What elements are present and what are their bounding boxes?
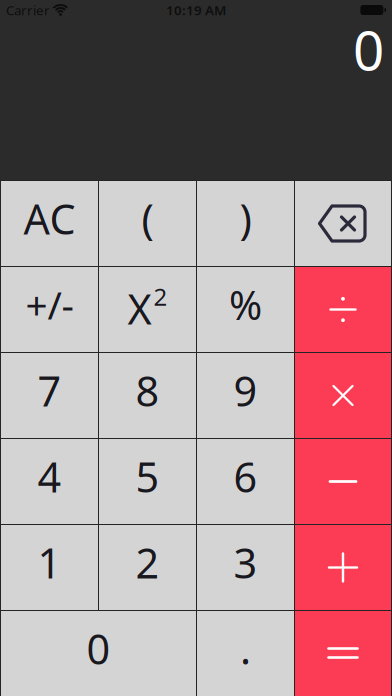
staticText: 4: [37, 449, 61, 504]
button[interactable]: .: [197, 611, 294, 696]
staticText: 8: [135, 363, 159, 418]
button[interactable]: 1: [1, 525, 98, 610]
staticText: 6: [233, 449, 257, 504]
button[interactable]: AC: [1, 181, 98, 266]
button[interactable]: ): [197, 181, 294, 266]
button[interactable]: 7: [1, 353, 98, 438]
staticText: +/-: [25, 279, 73, 330]
staticText: ): [239, 191, 251, 246]
staticText: .: [240, 621, 251, 676]
staticText: 0: [353, 13, 384, 86]
staticText: 9: [233, 363, 257, 418]
staticText: 10:19 AM: [166, 1, 226, 19]
staticText: %: [229, 278, 262, 331]
button[interactable]: 2: [99, 525, 196, 610]
button[interactable]: +/-: [1, 267, 98, 352]
button[interactable]: Subtract: [295, 439, 391, 524]
button[interactable]: 5: [99, 439, 196, 524]
button[interactable]: Equals: [295, 611, 391, 696]
staticText: 5: [135, 449, 159, 504]
button[interactable]: 8: [99, 353, 196, 438]
staticText: 7: [37, 363, 61, 418]
staticText: Carrier: [6, 1, 50, 19]
staticText: 0: [86, 621, 110, 676]
button[interactable]: Multiply: [295, 353, 391, 438]
button[interactable]: (: [99, 181, 196, 266]
staticText: AC: [23, 191, 75, 246]
button[interactable]: 9: [197, 353, 294, 438]
button[interactable]: 4: [1, 439, 98, 524]
staticText: (: [141, 191, 153, 246]
button[interactable]: Delete: [295, 181, 391, 266]
staticText: 2: [135, 535, 159, 590]
button[interactable]: Add: [295, 525, 391, 610]
button[interactable]: 0: [1, 611, 196, 696]
staticText: 2: [153, 281, 167, 312]
staticText: X: [127, 281, 151, 336]
button[interactable]: Divide: [295, 267, 391, 352]
button[interactable]: X: [99, 267, 196, 352]
button[interactable]: %: [197, 267, 294, 352]
button[interactable]: 3: [197, 525, 294, 610]
staticText: 3: [233, 535, 257, 590]
button[interactable]: 6: [197, 439, 294, 524]
staticText: 1: [37, 535, 61, 590]
